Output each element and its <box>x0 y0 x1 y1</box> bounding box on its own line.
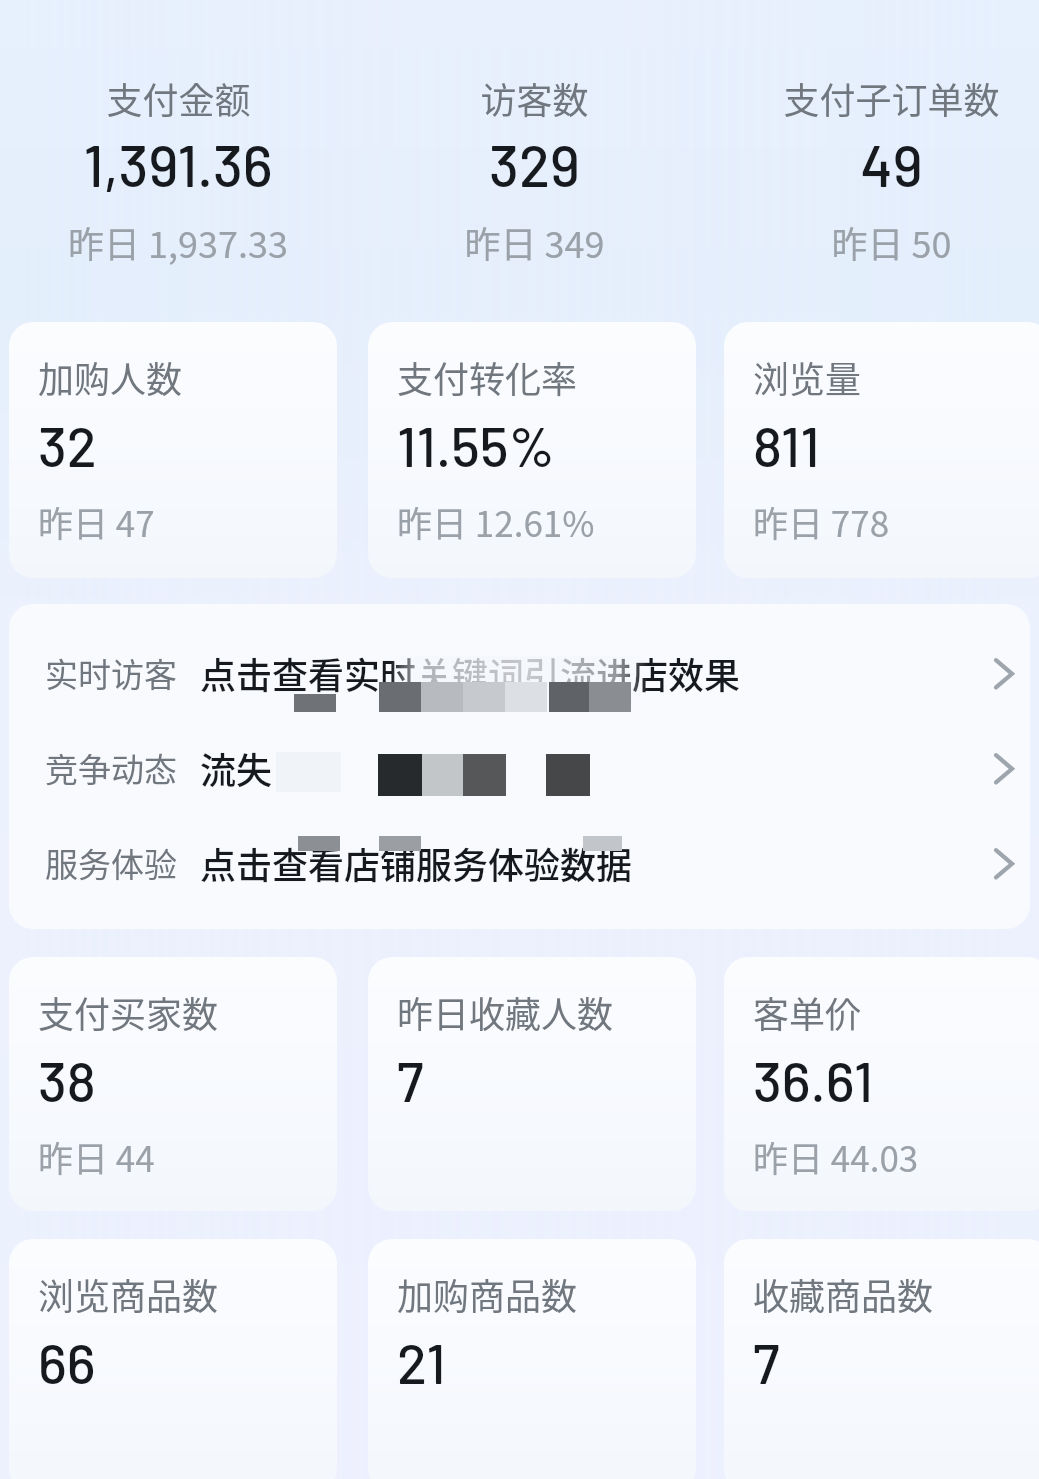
button[interactable]: 支付转化率 <box>368 322 696 578</box>
staticText: 点击查看店铺服务体验数据 <box>200 837 633 889</box>
staticText: 支付子订单数 <box>783 72 1000 124</box>
staticText: 竞争动态 <box>45 744 177 792</box>
staticText: 昨日收藏人数 <box>397 986 614 1038</box>
staticText: 21 <box>397 1329 446 1395</box>
button[interactable]: 访客数 <box>356 0 712 320</box>
staticText: 811 <box>753 412 820 478</box>
staticText: 昨日 349 <box>464 216 605 268</box>
staticText: 实时访客 <box>45 649 177 697</box>
staticText: 昨日 44.03 <box>753 1131 919 1182</box>
staticText: 昨日 778 <box>753 496 890 547</box>
staticText: 昨日 50 <box>831 216 952 268</box>
button[interactable]: 支付金额 <box>0 0 356 320</box>
staticText: 支付金额 <box>106 72 251 124</box>
button[interactable]: 收藏商品数 <box>724 1239 1039 1479</box>
button[interactable]: 服务体验 <box>9 815 1030 910</box>
staticText: 访客数 <box>480 72 589 124</box>
staticText: 昨日 47 <box>38 496 155 547</box>
button[interactable]: 加购商品数 <box>368 1239 696 1479</box>
staticText: 36.61 <box>753 1047 874 1113</box>
staticText: 支付转化率 <box>397 351 578 403</box>
staticText: 支付买家数 <box>38 986 219 1038</box>
button[interactable]: 支付子订单数 <box>713 0 1039 320</box>
staticText: 昨日 12.61% <box>397 496 595 547</box>
button[interactable]: 浏览量 <box>724 322 1039 578</box>
other: 查看详情 <box>984 653 1024 693</box>
staticText: 66 <box>38 1329 96 1395</box>
staticText: 49 <box>860 130 923 198</box>
button[interactable]: 竞争动态 <box>9 720 1030 815</box>
staticText: 38 <box>38 1047 96 1113</box>
staticText: 32 <box>38 412 97 478</box>
staticText: 昨日 44 <box>38 1131 155 1182</box>
staticText: 11.55% <box>397 412 555 478</box>
staticText: 加购商品数 <box>397 1268 578 1320</box>
staticText: 服务体验 <box>45 839 177 887</box>
button[interactable]: 浏览商品数 <box>9 1239 337 1479</box>
staticText: 浏览商品数 <box>38 1268 219 1320</box>
button[interactable]: 客单价 <box>724 957 1039 1211</box>
staticText: 流失 <box>200 742 273 794</box>
staticText: 收藏商品数 <box>753 1268 934 1320</box>
button[interactable]: 实时访客 <box>9 625 1030 720</box>
button[interactable]: 支付买家数 <box>9 957 337 1211</box>
other: 查看详情 <box>984 748 1024 788</box>
staticText: 客单价 <box>753 986 862 1038</box>
staticText: 7 <box>753 1329 780 1395</box>
button[interactable]: 昨日收藏人数 <box>368 957 696 1211</box>
staticText: 7 <box>397 1047 424 1113</box>
staticText: 浏览量 <box>753 351 862 403</box>
staticText: 昨日 1,937.33 <box>68 216 288 268</box>
staticText: 加购人数 <box>38 351 183 403</box>
staticText: 1,391.36 <box>83 130 273 198</box>
button[interactable]: 加购人数 <box>9 322 337 578</box>
staticText: 点击查看实时关键词引流进店效果 <box>200 647 741 699</box>
other: 查看详情 <box>984 843 1024 883</box>
staticText: 329 <box>489 130 580 198</box>
